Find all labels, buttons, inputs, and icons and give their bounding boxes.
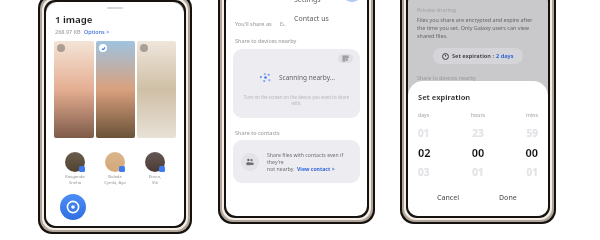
staticText: 01 xyxy=(458,165,498,179)
staticText: Cancel xyxy=(437,193,460,203)
staticText: mins xyxy=(498,111,538,118)
button[interactable]: Settings xyxy=(281,0,367,10)
staticText: 02 xyxy=(418,145,458,160)
button[interactable]: Quick Share xyxy=(60,194,86,220)
staticText: Etono, Viti xyxy=(140,174,170,185)
button[interactable]: QR code xyxy=(338,54,353,63)
staticText: hours xyxy=(458,111,498,118)
staticText: View contact > xyxy=(297,165,335,172)
staticText: Scanning nearby.. xyxy=(461,98,516,107)
staticText: 00 xyxy=(498,145,538,160)
button[interactable]: Bolade Cymla, Ayo xyxy=(100,152,130,185)
staticText: Files you share are encrypted and expire… xyxy=(417,16,539,40)
staticText: You'll share as xyxy=(235,20,272,27)
staticText: Set expiration : xyxy=(452,52,496,60)
staticText: Settings xyxy=(294,0,321,5)
staticText: 00 xyxy=(458,145,498,160)
staticText: 01 xyxy=(418,126,458,140)
staticText: Kasganda Sneha xyxy=(60,174,90,185)
staticText: Options > xyxy=(84,28,110,35)
button[interactable]: Set expiration : xyxy=(433,48,523,64)
staticText: Share to contacts xyxy=(235,129,280,136)
button[interactable]: Done xyxy=(478,189,538,207)
staticText: 03 xyxy=(418,165,458,179)
staticText: 1 image xyxy=(55,13,93,26)
staticText: Edit xyxy=(280,20,290,27)
button[interactable]: Contact us xyxy=(281,10,367,28)
staticText: Share files with contacts even if they'r… xyxy=(267,151,352,165)
staticText: Set expiration xyxy=(418,92,471,102)
staticText: days xyxy=(418,111,458,118)
button[interactable] xyxy=(96,41,135,138)
button[interactable]: Etono, Viti xyxy=(140,152,170,185)
button[interactable]: Cancel xyxy=(418,189,478,207)
staticText: 23 xyxy=(458,126,498,140)
staticText: 59 xyxy=(498,126,538,140)
button[interactable]: Kasganda Sneha xyxy=(60,152,90,185)
staticText: Bolade Cymla, Ayo xyxy=(100,174,130,185)
staticText: 01 xyxy=(498,165,538,179)
staticText: not nearby. xyxy=(267,165,297,172)
staticText: Share to devices nearby xyxy=(235,37,297,44)
staticText: 2 days xyxy=(496,52,514,60)
staticText: Turn on the screen on the device you wan… xyxy=(239,94,354,106)
staticText: 268.97 KB xyxy=(55,28,81,35)
button[interactable]: Options > xyxy=(84,28,110,35)
staticText: Contact us xyxy=(294,14,329,24)
button[interactable] xyxy=(54,41,94,138)
staticText: Private sharing xyxy=(417,6,457,13)
staticText: Share to devices nearby xyxy=(417,74,477,81)
button[interactable] xyxy=(137,41,176,138)
staticText: Done xyxy=(499,193,517,203)
staticText: Scanning nearby... xyxy=(279,73,335,82)
button[interactable]: Share files with contacts even if they'r… xyxy=(233,140,360,183)
